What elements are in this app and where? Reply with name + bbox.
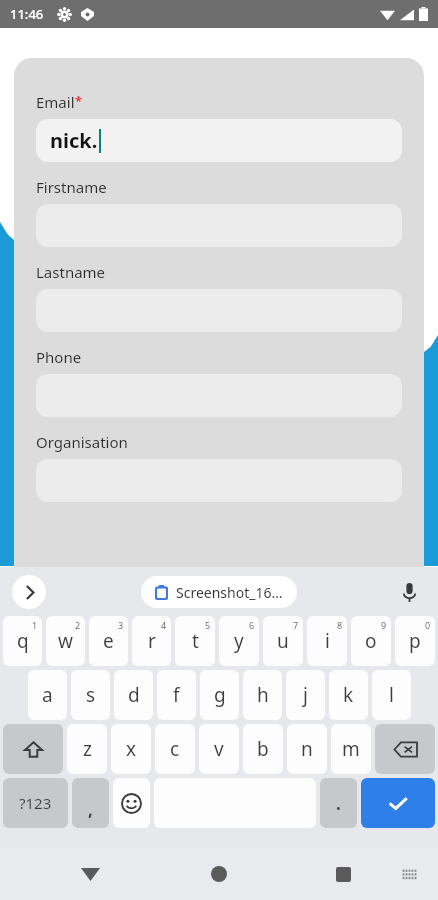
staticText: Lastname [36, 262, 106, 282]
button[interactable]: c [155, 724, 195, 774]
staticText: . [336, 792, 341, 815]
staticText: 4 [161, 619, 167, 631]
staticText: v [214, 736, 224, 762]
button[interactable]: , [72, 778, 109, 828]
button[interactable]: k [329, 670, 368, 720]
staticText: c [170, 736, 180, 762]
staticText: j [303, 682, 308, 708]
button[interactable]: y [219, 616, 259, 666]
button[interactable]: ?123 [3, 778, 68, 828]
staticText: Firstname [36, 177, 107, 197]
button[interactable]: w [46, 616, 85, 666]
button[interactable]: Screenshot_16… [141, 576, 297, 608]
button[interactable]: m [331, 724, 371, 774]
staticText: d [128, 682, 140, 708]
staticText: 2 [75, 619, 81, 631]
staticText: 8 [337, 619, 343, 631]
staticText: q [17, 628, 29, 654]
staticText: 11:46 [10, 5, 44, 23]
button[interactable]: Shift [3, 724, 63, 774]
staticText: n [301, 736, 313, 762]
staticText: u [277, 628, 289, 654]
button[interactable]: r [132, 616, 171, 666]
staticText: ?123 [19, 793, 52, 813]
button[interactable]: i [307, 616, 347, 666]
staticText: * [75, 92, 83, 110]
staticText: r [148, 628, 156, 654]
staticText: m [342, 736, 360, 762]
button[interactable]: n [287, 724, 327, 774]
staticText: 6 [249, 619, 255, 631]
button[interactable]: v [199, 724, 239, 774]
staticText: t [192, 628, 199, 654]
button[interactable]: d [114, 670, 153, 720]
button[interactable]: Voice input [394, 577, 424, 607]
button[interactable]: g [200, 670, 239, 720]
staticText: s [86, 682, 96, 708]
button[interactable]: l [372, 670, 411, 720]
staticText: a [42, 682, 53, 708]
button[interactable]: Back [70, 854, 110, 894]
staticText: o [365, 628, 377, 654]
button[interactable]: b [243, 724, 283, 774]
button[interactable]: x [111, 724, 151, 774]
staticText: Organisation [36, 432, 128, 452]
staticText: l [389, 682, 394, 708]
staticText: k [343, 682, 354, 708]
staticText: i [325, 628, 330, 654]
staticText: Phone [36, 347, 82, 367]
button[interactable]: Backspace [375, 724, 435, 774]
button[interactable]: Switch keyboard [392, 857, 426, 891]
button[interactable]: s [71, 670, 110, 720]
button[interactable]: z [67, 724, 107, 774]
staticText: 5 [205, 619, 211, 631]
staticText: 1 [32, 619, 38, 631]
staticText: g [214, 682, 226, 708]
button[interactable]: h [243, 670, 282, 720]
staticText: 9 [381, 619, 387, 631]
button[interactable]: nick. [36, 119, 402, 162]
button[interactable]: Recents [323, 854, 363, 894]
staticText: 7 [293, 619, 299, 631]
button[interactable]: u [263, 616, 303, 666]
staticText: p [409, 628, 421, 654]
button[interactable]: . [320, 778, 357, 828]
button[interactable]: e [89, 616, 128, 666]
staticText: nick. [50, 127, 98, 154]
staticText: 0 [425, 619, 431, 631]
staticText: 3 [118, 619, 124, 631]
staticText: , [88, 798, 93, 821]
button[interactable]: j [286, 670, 325, 720]
button[interactable]: o [351, 616, 391, 666]
button[interactable]: q [3, 616, 42, 666]
staticText: w [58, 628, 73, 654]
staticText: x [126, 736, 137, 762]
button[interactable]: Home [199, 854, 239, 894]
staticText: Email [36, 92, 75, 112]
button[interactable]: t [175, 616, 215, 666]
button[interactable]: p [395, 616, 435, 666]
button[interactable]: Emoji [113, 778, 150, 828]
staticText: y [234, 628, 244, 654]
button[interactable]: f [157, 670, 196, 720]
staticText: b [257, 736, 269, 762]
button[interactable]: a [28, 670, 67, 720]
staticText: z [83, 736, 92, 762]
button[interactable]: Expand toolbar [12, 575, 46, 609]
button[interactable]: Enter [361, 778, 435, 828]
staticText: e [103, 628, 114, 654]
staticText: h [257, 682, 269, 708]
staticText: f [173, 682, 180, 708]
staticText: Screenshot_16… [176, 583, 283, 602]
